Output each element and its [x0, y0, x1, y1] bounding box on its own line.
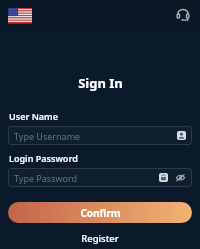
button[interactable]: Type Password	[8, 168, 192, 187]
staticText: Register	[81, 232, 119, 245]
button[interactable]: Type Username	[8, 126, 192, 145]
button[interactable]: Register	[0, 232, 200, 245]
staticText: Confirm	[80, 206, 121, 220]
staticText: Type Username	[14, 130, 177, 142]
button[interactable]: Customer support	[174, 6, 192, 24]
button[interactable]: Language: United States	[8, 8, 32, 23]
button[interactable]: Show password	[175, 172, 186, 183]
staticText: Sign In	[78, 74, 123, 92]
staticText: Login Password	[9, 152, 78, 164]
button[interactable]: Confirm	[8, 202, 192, 223]
staticText: User Name	[9, 110, 58, 122]
staticText: Type Password	[14, 172, 159, 184]
